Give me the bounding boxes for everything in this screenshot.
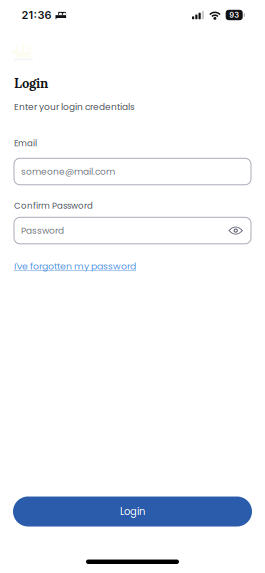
staticText: 93 [229,10,239,20]
staticText: Enter your login credentials [14,101,135,113]
staticText: I've forgotten my password [14,260,136,273]
button[interactable]: Login [13,496,252,526]
staticText: Confirm Password [14,200,93,212]
staticText: Email [14,137,37,149]
staticText: Login [120,504,145,518]
button[interactable]: I've forgotten my password [14,260,136,273]
staticText: Login [14,75,48,92]
staticText: someone@mail.com [21,165,115,178]
staticText: 21:36 [21,8,51,22]
staticText: Password [21,224,64,237]
